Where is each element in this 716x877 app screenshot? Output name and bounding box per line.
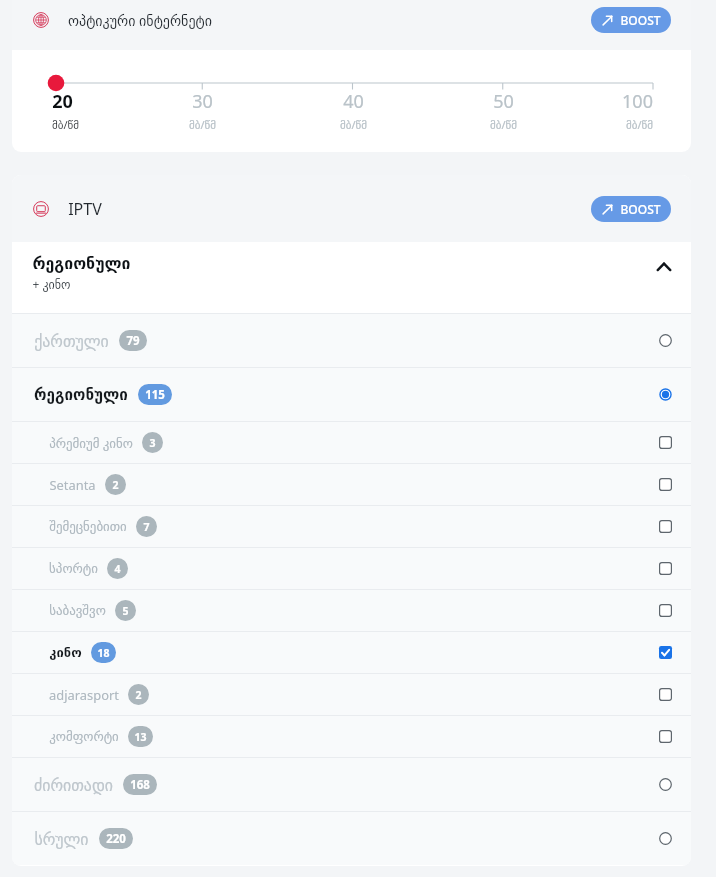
staticText: მბ/წმ — [52, 117, 79, 132]
staticText: ოპტიკური ინტერნეტი — [68, 11, 212, 30]
staticText: შემეცნებითი — [49, 519, 127, 534]
other: Select package — [659, 832, 672, 845]
staticText: 168 — [130, 777, 150, 793]
other: Collapse — [657, 260, 671, 274]
staticText: რეგიონული — [32, 254, 131, 273]
staticText: 3 — [149, 436, 156, 450]
button[interactable]: კომფორტი — [12, 716, 691, 757]
staticText: 2 — [112, 478, 119, 492]
staticText: 79 — [126, 333, 140, 349]
staticText: 115 — [145, 387, 165, 403]
staticText: 4 — [114, 562, 121, 576]
staticText: სრული — [34, 830, 89, 848]
button[interactable]: სრული — [12, 812, 691, 865]
staticText: სპორტი — [49, 561, 98, 576]
other: Select package — [659, 778, 672, 791]
staticText: ძირითადი — [34, 776, 113, 794]
staticText: BOOST — [620, 201, 661, 217]
other: Toggle channel pack — [659, 730, 672, 743]
other: Toggle channel pack — [659, 688, 672, 701]
other: Toggle channel pack — [659, 604, 672, 617]
button[interactable]: BOOST — [591, 7, 671, 33]
button[interactable]: რეგიონული — [12, 368, 691, 421]
button[interactable]: Setanta — [12, 464, 691, 505]
staticText: 30 — [192, 89, 213, 114]
staticText: ქართული — [34, 332, 109, 350]
other: Select package — [659, 334, 672, 347]
button[interactable]: ქართული — [12, 314, 691, 367]
staticText: Setanta — [49, 476, 96, 494]
button[interactable]: რეგიონული — [12, 242, 691, 313]
other: Toggle channel pack — [659, 646, 672, 659]
staticText: 100 — [622, 89, 653, 114]
staticText: მბ/წმ — [490, 117, 517, 132]
staticText: 20 — [52, 89, 73, 114]
staticText: 7 — [143, 520, 150, 534]
button[interactable]: adjarasport — [12, 674, 691, 715]
button[interactable]: პრემიუმ კინო — [12, 422, 691, 463]
button[interactable]: შემეცნებითი — [12, 506, 691, 547]
staticText: + კინო — [32, 276, 71, 292]
staticText: საბავშვო — [49, 603, 106, 618]
staticText: 220 — [106, 831, 126, 847]
other: Select package — [659, 388, 672, 401]
button[interactable]: BOOST — [591, 196, 671, 222]
other: Toggle channel pack — [659, 562, 672, 575]
other: Toggle channel pack — [659, 520, 672, 533]
staticText: IPTV — [68, 198, 102, 220]
staticText: 2 — [135, 688, 142, 702]
staticText: პრემიუმ კინო — [49, 434, 133, 452]
staticText: 5 — [122, 604, 129, 618]
staticText: კინო — [49, 645, 82, 660]
staticText: BOOST — [620, 12, 661, 28]
button[interactable]: კინო — [12, 632, 691, 673]
button[interactable]: ძირითადი — [12, 758, 691, 811]
staticText: კომფორტი — [49, 729, 119, 744]
button[interactable]: სპორტი — [12, 548, 691, 589]
staticText: 50 — [493, 89, 514, 114]
staticText: მბ/წმ — [340, 117, 367, 132]
staticText: 13 — [134, 730, 147, 744]
button[interactable]: საბავშვო — [12, 590, 691, 631]
staticText: 40 — [343, 89, 364, 114]
staticText: მბ/წმ — [626, 117, 653, 132]
staticText: მბ/წმ — [189, 117, 216, 132]
other: Toggle channel pack — [659, 436, 672, 449]
staticText: 18 — [97, 646, 110, 660]
staticText: adjarasport — [49, 686, 119, 704]
other: Toggle channel pack — [659, 478, 672, 491]
staticText: რეგიონული — [34, 386, 128, 404]
